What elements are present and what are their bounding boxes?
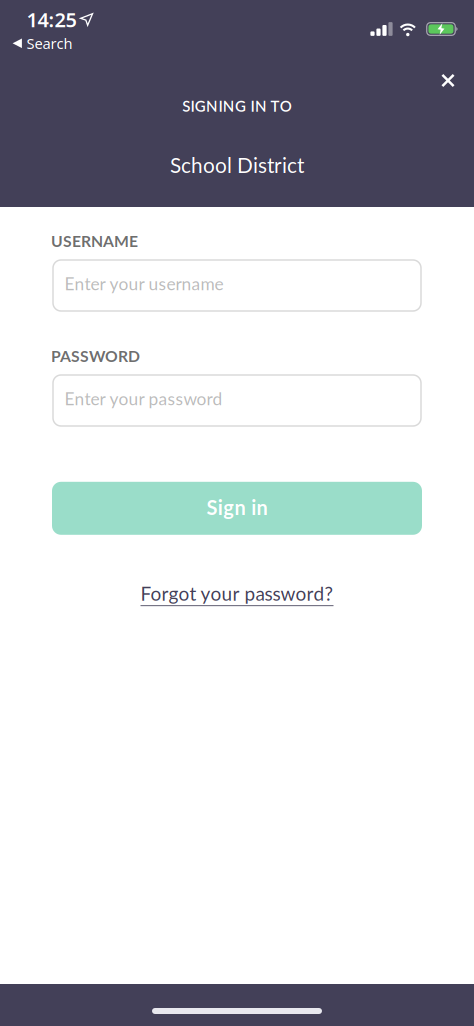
button[interactable]: Close: [433, 66, 462, 95]
textField[interactable]: Enter your username: [53, 260, 421, 311]
button[interactable]: Forgot your password?: [140, 582, 333, 605]
staticText: 14:25: [26, 6, 76, 33]
staticText: Enter your password: [64, 388, 222, 409]
staticText: School District: [170, 152, 304, 177]
button[interactable]: Search: [13, 34, 72, 53]
staticText: Forgot your password?: [140, 582, 333, 605]
staticText: Search: [26, 34, 72, 53]
staticText: Sign in: [206, 495, 267, 519]
button[interactable]: Sign in: [52, 482, 422, 535]
staticText: SIGNING IN TO: [182, 97, 292, 115]
staticText: Enter your username: [64, 273, 223, 294]
staticText: PASSWORD: [51, 347, 140, 365]
staticText: USERNAME: [51, 232, 138, 250]
textField[interactable]: Enter your password: [53, 375, 421, 426]
